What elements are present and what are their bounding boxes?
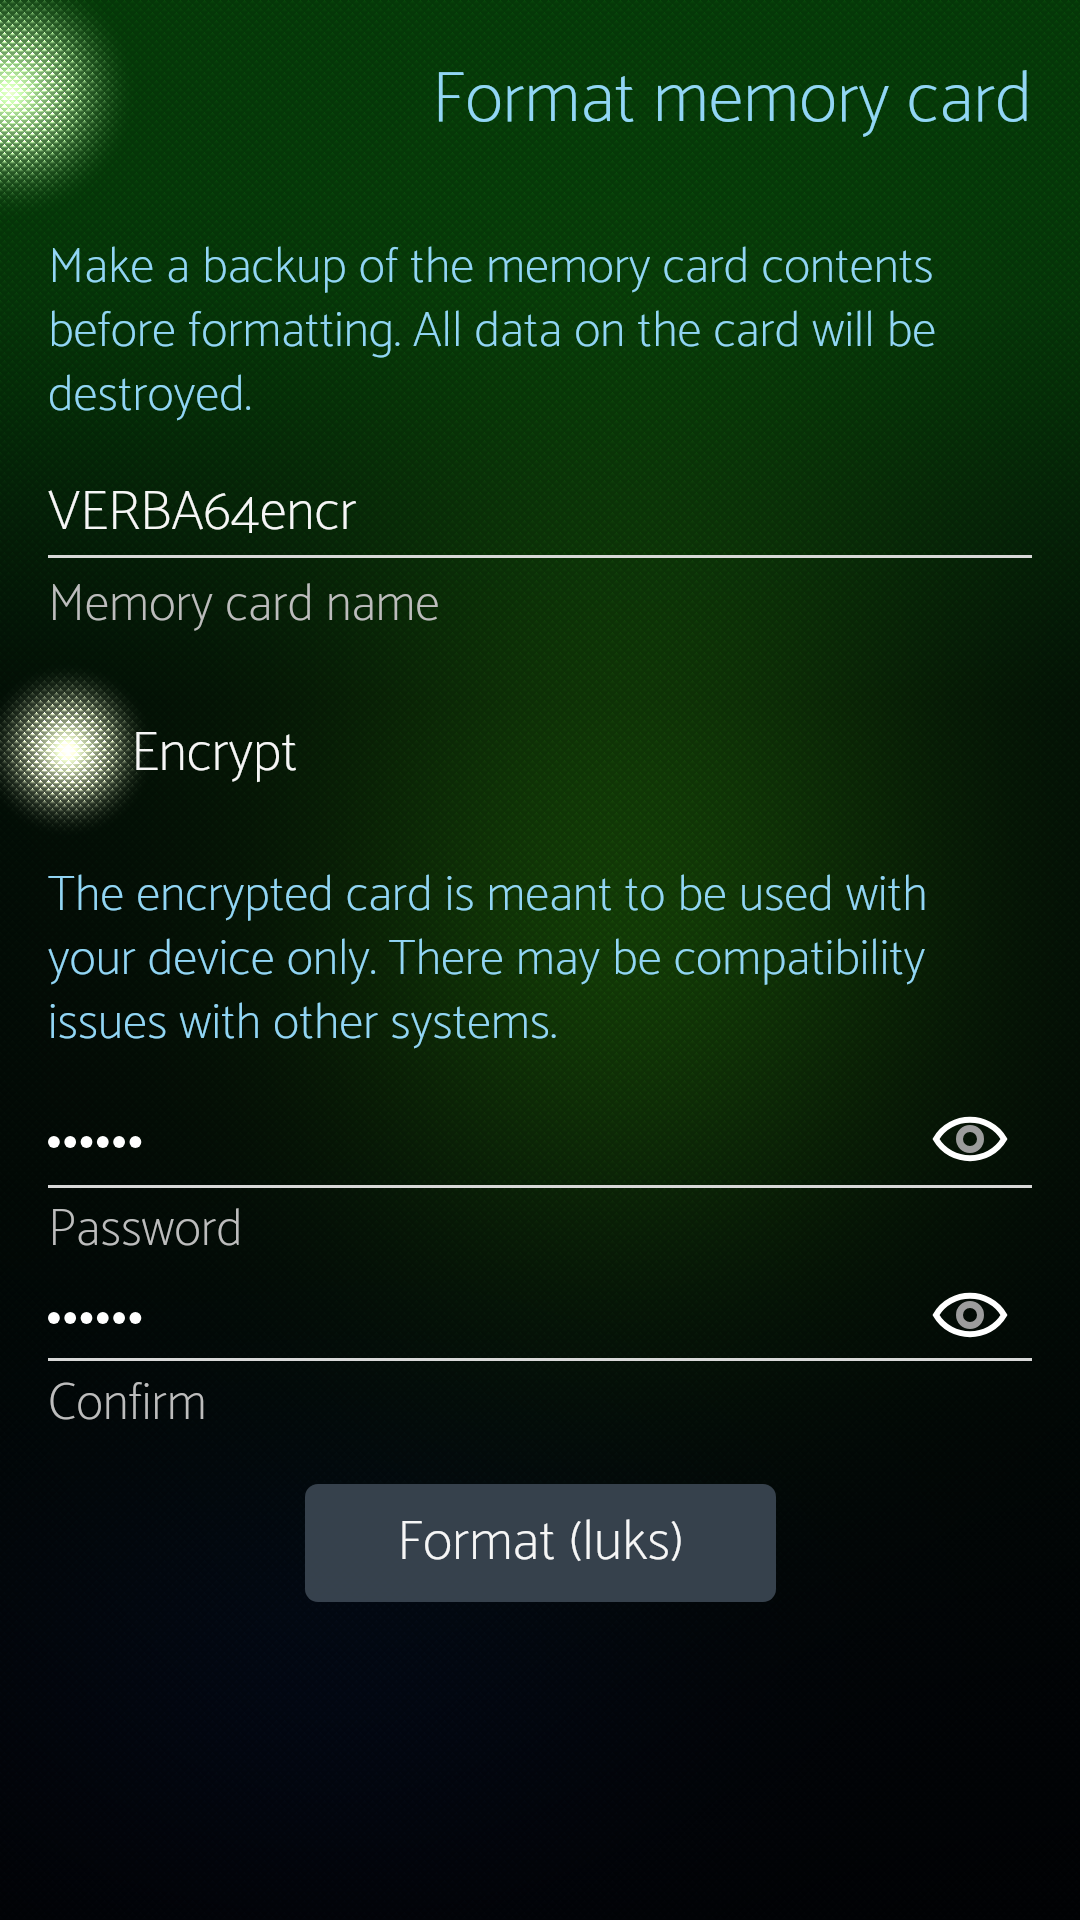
button[interactable]: Show password (918, 1095, 1022, 1183)
staticText: Encrypt (131, 708, 298, 800)
button[interactable]: Format (luks) (305, 1484, 776, 1602)
button[interactable]: Encrypt (0, 680, 1080, 800)
staticText: VERBA64encr (48, 467, 357, 559)
button[interactable]: Show password (918, 1271, 1022, 1359)
staticText: Format memory card (0, 42, 1032, 160)
staticText: Memory card name (48, 564, 440, 648)
staticText: Password (48, 1189, 243, 1273)
staticText: Format (luks) (397, 1497, 684, 1589)
staticText: Confirm (48, 1363, 207, 1447)
staticText: The encrypted card is meant to be used w… (48, 855, 988, 1065)
staticText: Make a backup of the memory card content… (48, 227, 988, 437)
